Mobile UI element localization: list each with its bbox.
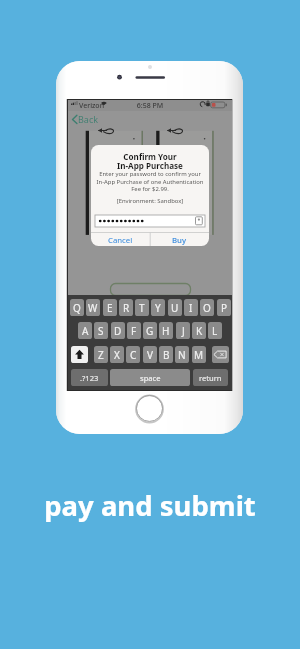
staticText: N <box>178 348 186 362</box>
staticText: Back <box>78 113 99 125</box>
staticText: H <box>162 324 170 338</box>
staticText: pay and submit <box>0 487 300 524</box>
button[interactable]: I <box>184 299 198 316</box>
button[interactable]: R <box>119 299 133 316</box>
staticText: V <box>147 348 153 362</box>
staticText: U <box>171 301 179 315</box>
button[interactable]: U <box>168 299 182 316</box>
button[interactable]: O <box>200 299 214 316</box>
button[interactable]: Delete <box>212 346 229 363</box>
button[interactable]: space <box>110 369 190 386</box>
staticText: P <box>221 301 228 315</box>
button[interactable]: Z <box>94 346 108 363</box>
staticText: space <box>140 373 161 383</box>
staticText: W <box>88 301 98 315</box>
staticText: B <box>163 348 170 362</box>
button[interactable]: C <box>126 346 140 363</box>
staticText: J <box>182 324 185 338</box>
staticText: A <box>82 324 89 338</box>
button[interactable]: F <box>127 322 141 339</box>
staticText: Verizon <box>79 101 105 111</box>
staticText: Cancel <box>108 235 133 246</box>
staticText: I <box>189 301 193 315</box>
button[interactable]: Q <box>70 299 84 316</box>
button[interactable]: E <box>103 299 117 316</box>
button[interactable]: Shift <box>71 346 88 363</box>
button[interactable]: V <box>143 346 157 363</box>
staticText: Buy <box>172 235 187 246</box>
staticText: Q <box>73 301 81 315</box>
button[interactable]: D <box>111 322 125 339</box>
staticText: Confirm Your In-App Purchase <box>91 151 209 172</box>
staticText: Z <box>98 348 104 362</box>
button[interactable]: P <box>217 299 231 316</box>
staticText: 6:58 PM <box>68 101 232 111</box>
staticText: Y <box>155 301 161 315</box>
button[interactable]: return <box>193 369 228 386</box>
staticText: R <box>123 301 130 315</box>
staticText: D <box>114 324 122 338</box>
button[interactable]: K <box>192 322 206 339</box>
button[interactable]: L <box>208 322 222 339</box>
staticText: G <box>146 324 154 338</box>
staticText: K <box>196 324 203 338</box>
button[interactable]: Cancel <box>91 233 150 246</box>
button[interactable]: Buy <box>150 233 209 246</box>
button[interactable]: T <box>135 299 149 316</box>
button[interactable] <box>95 215 205 227</box>
staticText: Enter your password to confirm your In-A… <box>91 170 209 193</box>
button[interactable]: H <box>159 322 173 339</box>
button[interactable]: N <box>175 346 189 363</box>
button[interactable]: .?123 <box>71 369 108 386</box>
staticText: M <box>194 348 204 362</box>
button[interactable]: B <box>159 346 173 363</box>
button[interactable]: S <box>94 322 108 339</box>
staticText: X <box>114 348 120 362</box>
staticText: O <box>203 301 211 315</box>
staticText: C <box>130 348 137 362</box>
button[interactable]: J <box>176 322 190 339</box>
button[interactable]: M <box>192 346 206 363</box>
button[interactable]: W <box>86 299 100 316</box>
staticText: E <box>107 301 113 315</box>
staticText: S <box>98 324 104 338</box>
button[interactable]: G <box>143 322 157 339</box>
staticText: .?123 <box>80 373 99 383</box>
button[interactable]: Back <box>70 111 104 127</box>
button[interactable]: Y <box>151 299 165 316</box>
button[interactable]: X <box>110 346 124 363</box>
staticText: T <box>139 301 145 315</box>
staticText: return <box>199 373 222 383</box>
staticText: L <box>212 324 218 338</box>
staticText: F <box>131 324 137 338</box>
staticText: [Environment: Sandbox] <box>91 197 209 205</box>
button[interactable]: A <box>78 322 92 339</box>
